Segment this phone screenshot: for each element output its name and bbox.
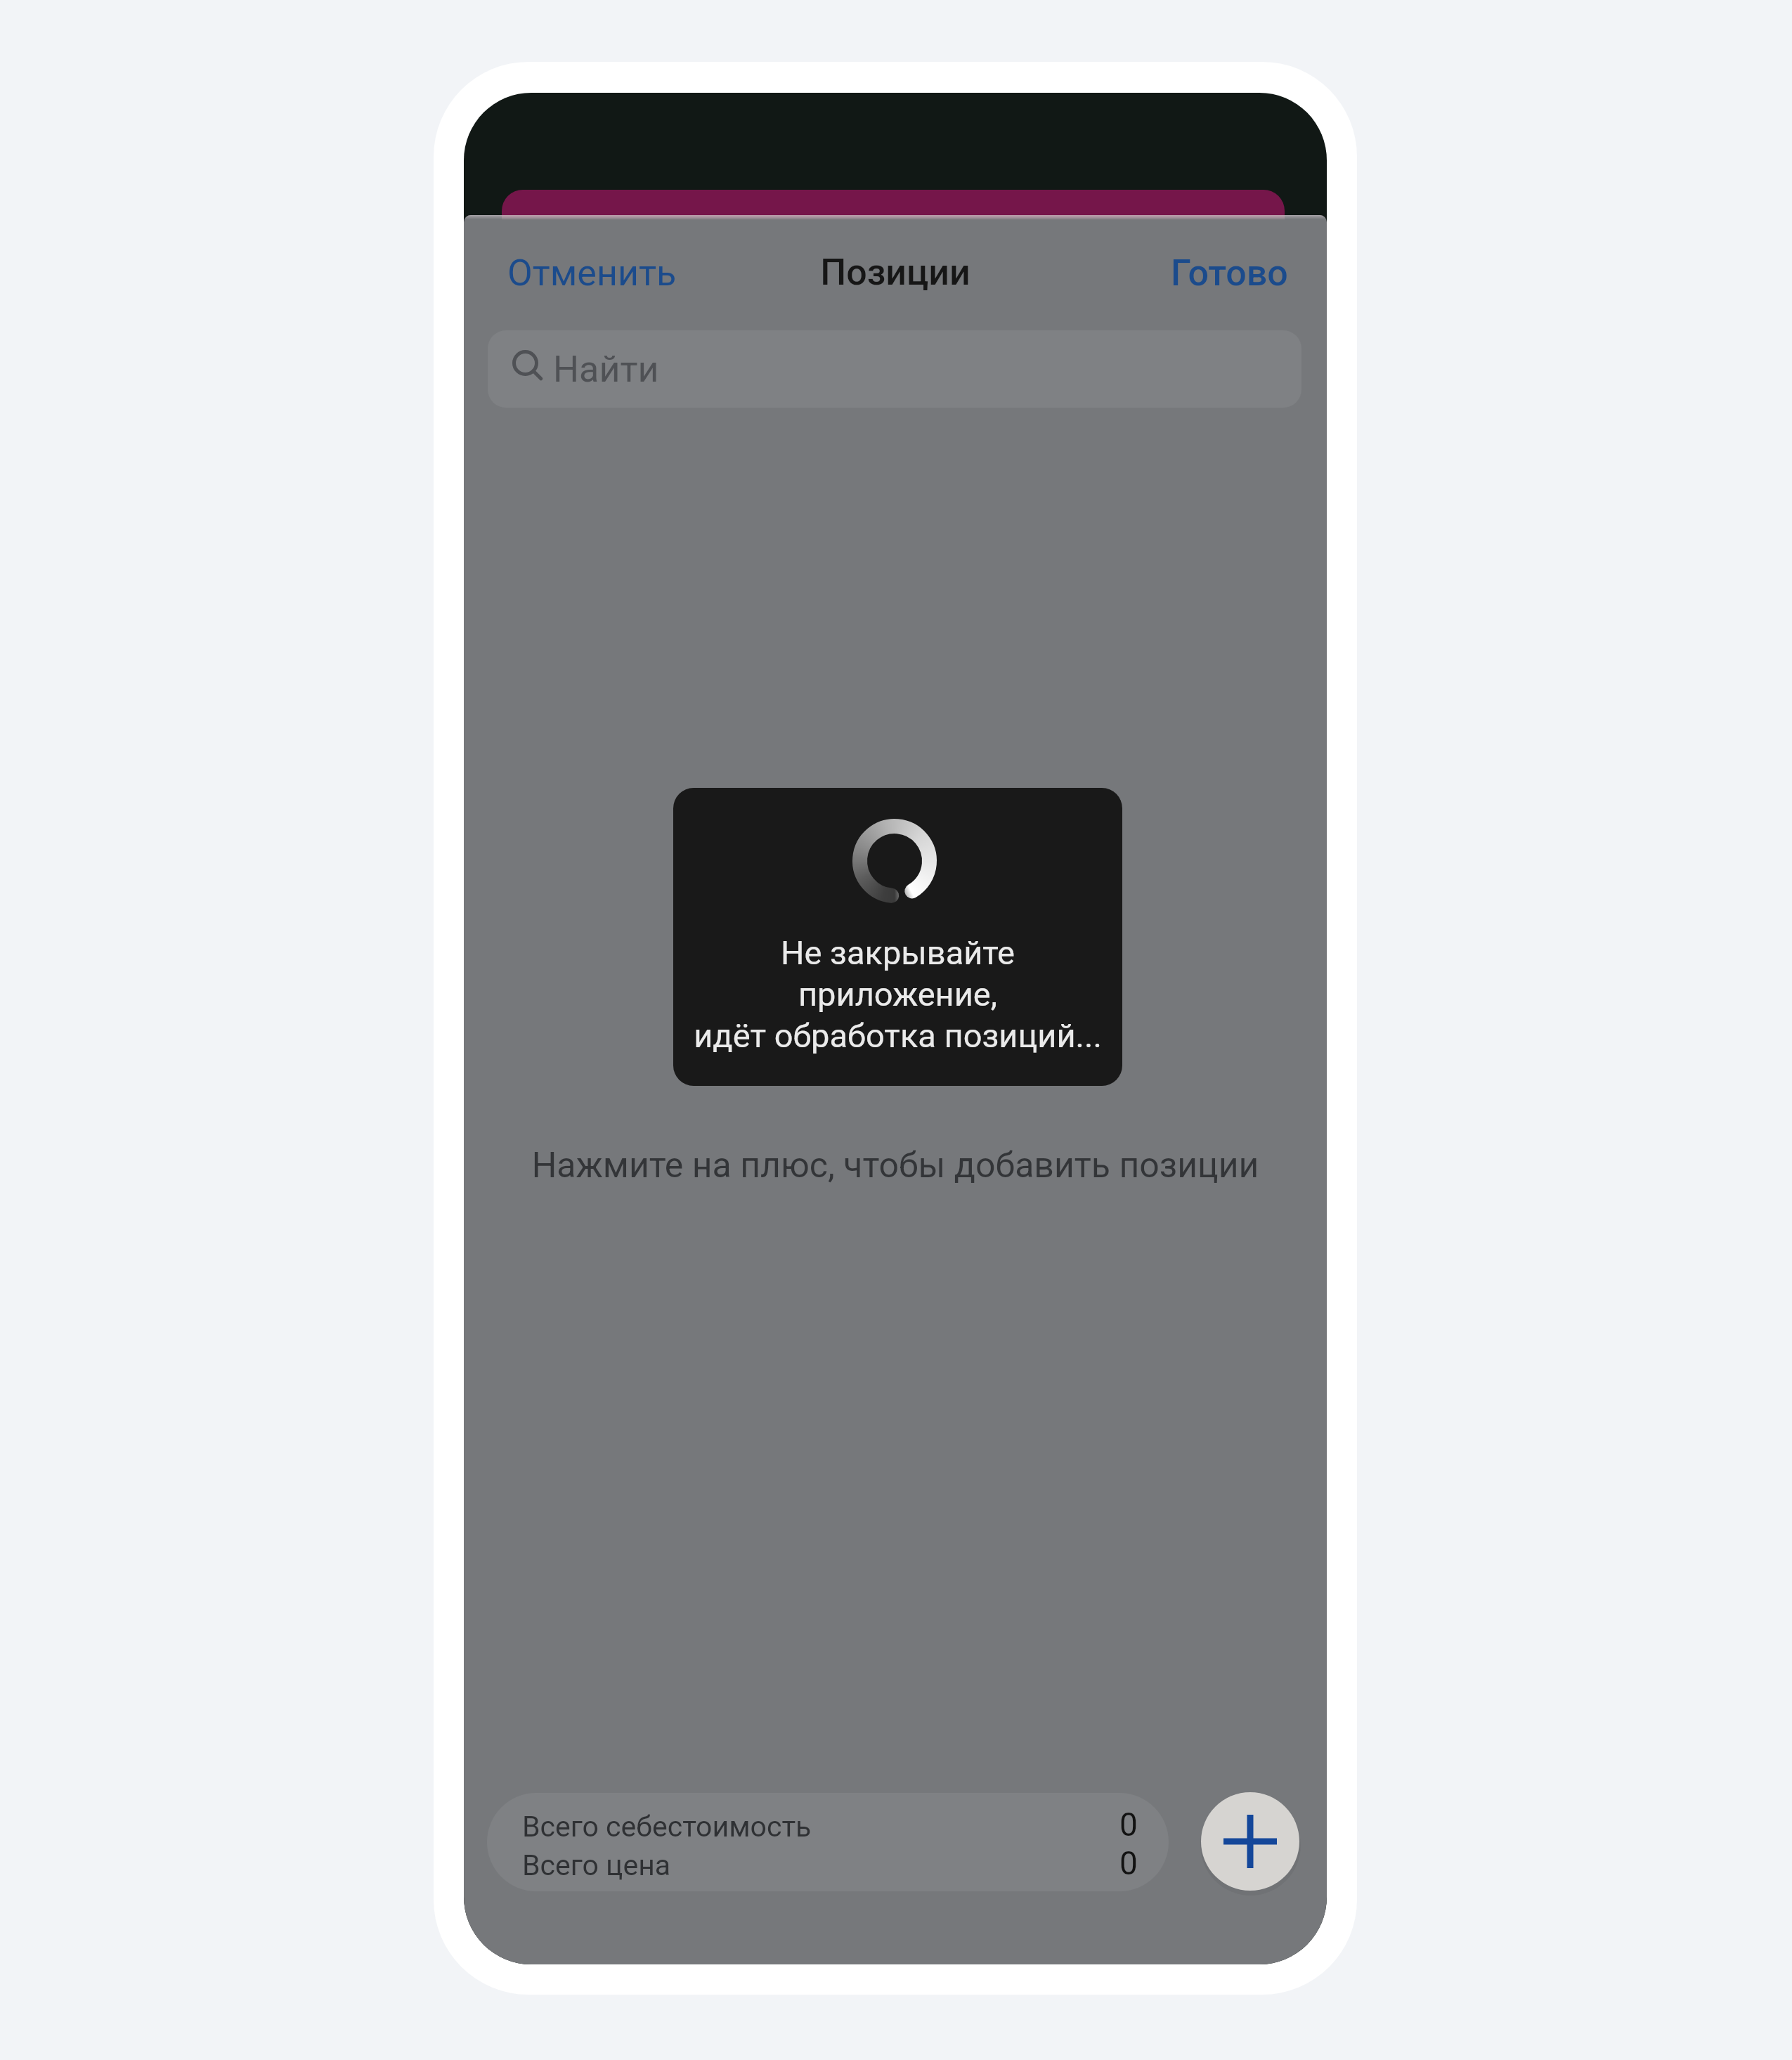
- button[interactable]: Найти: [488, 330, 1301, 408]
- staticText: Готово: [1171, 252, 1288, 294]
- staticText: Всего цена: [522, 1848, 671, 1882]
- staticText: Отменить: [507, 252, 677, 294]
- staticText: Нажмите на плюс, чтобы добавить позиции: [464, 1145, 1327, 1186]
- staticText: Всего себестоимость: [522, 1810, 812, 1844]
- staticText: 0: [1119, 1806, 1138, 1844]
- button[interactable]: Отменить: [483, 240, 701, 306]
- button[interactable]: Добавить позицию: [1201, 1792, 1299, 1891]
- staticText: 0: [1119, 1844, 1138, 1882]
- button[interactable]: Готово: [1147, 240, 1312, 306]
- staticText: Найти: [553, 348, 659, 391]
- button[interactable]: Всего себестоимость: [487, 1793, 1169, 1891]
- staticText: Не закрывайте приложение, идёт обработка…: [673, 933, 1122, 1055]
- staticText: Позиции: [464, 251, 1327, 294]
